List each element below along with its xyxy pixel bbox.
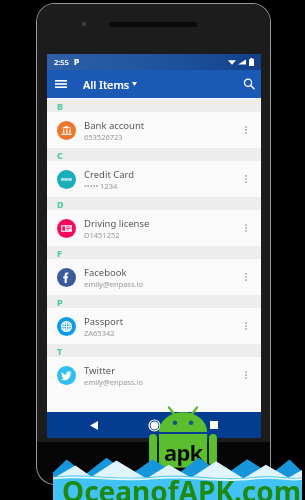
staticText: Passport	[84, 315, 124, 328]
button[interactable]: Open navigation menu	[47, 70, 75, 98]
button[interactable]: Driving license	[47, 210, 261, 246]
button[interactable]: Twitter	[47, 357, 261, 393]
button[interactable]: Back	[81, 412, 107, 438]
button[interactable]: More options for Twitter	[231, 357, 261, 393]
button[interactable]: More options for Credit Card	[231, 161, 261, 197]
staticText: ••••• 1234	[84, 181, 118, 191]
staticText: 653526723	[84, 132, 123, 142]
staticText: P	[74, 56, 80, 68]
button[interactable]: More options for Passport	[231, 308, 261, 344]
staticText: Driving license	[84, 217, 150, 230]
staticText: P	[57, 296, 63, 308]
staticText: apk	[164, 437, 203, 467]
button[interactable]: Bank account	[47, 112, 261, 148]
button[interactable]: More options for Facebook	[231, 259, 261, 295]
staticText: 2:55	[54, 57, 69, 67]
staticText: D1451252	[84, 230, 120, 240]
staticText: Bank account	[84, 119, 145, 132]
button[interactable]: All Items	[83, 70, 137, 98]
staticText: F	[57, 247, 62, 259]
staticText: ZA65342	[84, 328, 115, 338]
button[interactable]: Passport	[47, 308, 261, 344]
staticText: Twitter	[84, 364, 116, 377]
button[interactable]: Home	[141, 412, 167, 438]
button[interactable]: More options for Driving license	[231, 210, 261, 246]
button[interactable]: Facebook	[47, 259, 261, 295]
button[interactable]: Credit Card	[47, 161, 261, 197]
staticText: OceanofAPK.com	[62, 472, 302, 500]
button[interactable]: More options for Bank account	[231, 112, 261, 148]
staticText: C	[57, 149, 63, 161]
staticText: B	[57, 100, 63, 112]
staticText: All Items	[83, 77, 130, 92]
button[interactable]: Search	[237, 70, 261, 98]
staticText: D	[57, 198, 64, 210]
button[interactable]: Recent apps	[201, 412, 227, 438]
staticText: T	[57, 345, 63, 357]
staticText: emily@enpass.io	[84, 377, 144, 387]
staticText: Credit Card	[84, 168, 135, 181]
staticText: Facebook	[84, 266, 127, 279]
staticText: emily@enpass.io	[84, 279, 144, 289]
